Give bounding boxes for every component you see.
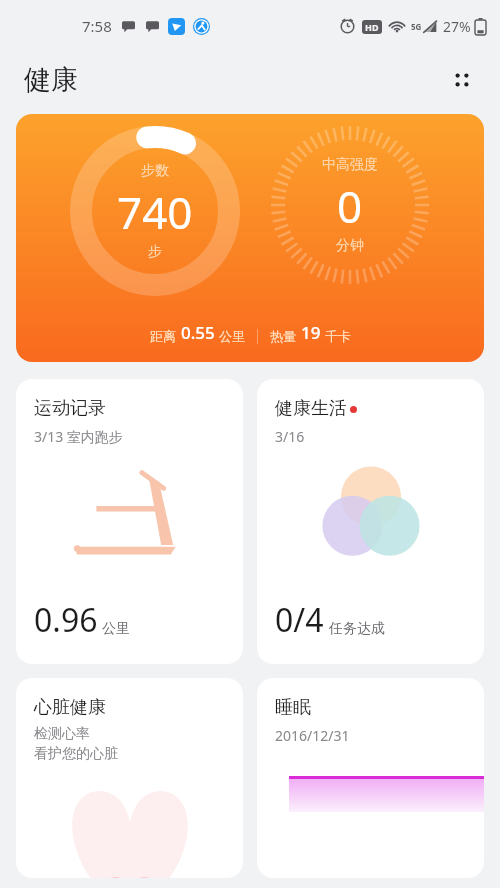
- staticText: 27%: [443, 17, 471, 36]
- staticText: 热量: [270, 328, 296, 344]
- staticText: 中高强度: [322, 156, 378, 174]
- staticText: 任务达成: [329, 620, 385, 638]
- staticText: 公里: [102, 620, 130, 638]
- button[interactable]: 运动记录: [16, 379, 243, 664]
- button[interactable]: 健康生活: [257, 379, 484, 664]
- staticText: 5G: [411, 21, 422, 32]
- staticText: 3/16: [275, 427, 305, 446]
- staticText: 3/13 室内跑步: [34, 427, 123, 446]
- staticText: 分钟: [336, 237, 364, 255]
- staticText: 心脏健康: [34, 696, 106, 719]
- staticText: 0/4: [275, 598, 324, 642]
- staticText: 健康: [24, 63, 78, 97]
- staticText: 健康生活: [275, 397, 347, 420]
- staticText: 0.55: [181, 321, 215, 344]
- staticText: 检测心率: [34, 725, 90, 743]
- button[interactable]: 心脏健康: [16, 678, 243, 878]
- staticText: 距离: [150, 328, 176, 344]
- button[interactable]: 步数: [16, 114, 484, 362]
- staticText: 看护您的心脏: [34, 745, 118, 763]
- staticText: 步: [148, 243, 162, 261]
- button[interactable]: 睡眠: [257, 678, 484, 878]
- staticText: 2016/12/31: [275, 726, 350, 745]
- staticText: 睡眠: [275, 696, 311, 719]
- staticText: 7:58: [82, 16, 112, 36]
- staticText: 0.96: [34, 598, 98, 642]
- staticText: 19: [301, 321, 321, 344]
- staticText: HD: [365, 21, 379, 33]
- staticText: 公里: [219, 328, 245, 344]
- button[interactable]: More options: [440, 58, 484, 102]
- staticText: 千卡: [325, 328, 351, 344]
- staticText: 740: [117, 182, 193, 242]
- staticText: 运动记录: [34, 397, 106, 420]
- staticText: 步数: [141, 162, 169, 180]
- staticText: 0: [337, 176, 363, 236]
